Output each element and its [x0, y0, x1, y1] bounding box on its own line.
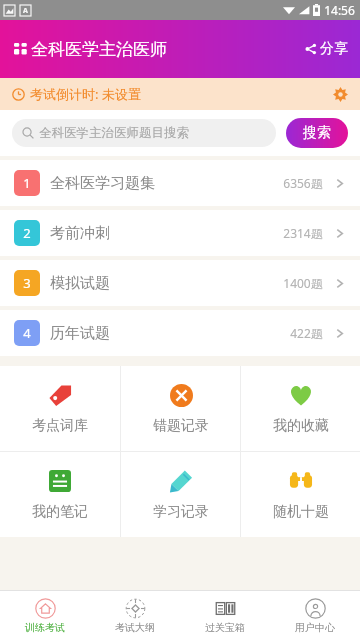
- staticText: 6356题: [283, 175, 323, 191]
- staticText: 1: [23, 174, 31, 192]
- staticText: 1400题: [283, 275, 323, 291]
- staticText: 422题: [290, 325, 323, 341]
- button[interactable]: 设置: [329, 83, 352, 106]
- button[interactable]: 1: [0, 160, 360, 206]
- button[interactable]: 2: [0, 210, 360, 256]
- staticText: 全科医学主治医师: [31, 39, 167, 60]
- staticText: 14:56: [324, 2, 355, 18]
- staticText: 全科医学习题集: [50, 174, 155, 193]
- staticText: 考点词库: [32, 417, 88, 435]
- staticText: A: [23, 6, 28, 16]
- staticText: 分享: [320, 40, 348, 58]
- staticText: 3: [23, 274, 31, 292]
- button[interactable]: 学习记录: [121, 452, 240, 537]
- staticText: 考前冲刺: [50, 224, 110, 243]
- button[interactable]: 我的笔记: [0, 452, 120, 537]
- staticText: 搜索: [303, 124, 331, 142]
- staticText: 过关宝箱: [205, 621, 245, 634]
- staticText: 我的笔记: [32, 503, 88, 521]
- button[interactable]: 用户中心: [270, 591, 360, 640]
- button[interactable]: 过关宝箱: [180, 591, 270, 640]
- staticText: 历年试题: [50, 324, 110, 343]
- staticText: 全科医学主治医师题目搜索: [39, 125, 189, 141]
- button[interactable]: 我的收藏: [241, 366, 360, 451]
- button[interactable]: 分享: [293, 32, 360, 66]
- staticText: 4: [23, 324, 31, 342]
- staticText: 训练考试: [25, 621, 65, 634]
- staticText: 学习记录: [153, 503, 209, 521]
- button[interactable]: 3: [0, 260, 360, 306]
- staticText: 错题记录: [153, 417, 209, 435]
- staticText: 考试大纲: [115, 621, 155, 634]
- staticText: 2314题: [283, 225, 323, 241]
- staticText: 考试倒计时: 未设置: [30, 85, 141, 103]
- button[interactable]: 错题记录: [121, 366, 240, 451]
- button[interactable]: 4: [0, 310, 360, 356]
- staticText: 模拟试题: [50, 274, 110, 293]
- staticText: 随机十题: [273, 503, 329, 521]
- button[interactable]: 全科医学主治医师题目搜索: [12, 119, 276, 147]
- staticText: 我的收藏: [273, 417, 329, 435]
- staticText: 用户中心: [295, 621, 335, 634]
- button[interactable]: 考点词库: [0, 366, 120, 451]
- button[interactable]: 考试大纲: [90, 591, 180, 640]
- button[interactable]: 训练考试: [0, 591, 90, 640]
- button[interactable]: 搜索: [286, 118, 348, 148]
- staticText: 2: [23, 224, 31, 242]
- button[interactable]: 随机十题: [241, 452, 360, 537]
